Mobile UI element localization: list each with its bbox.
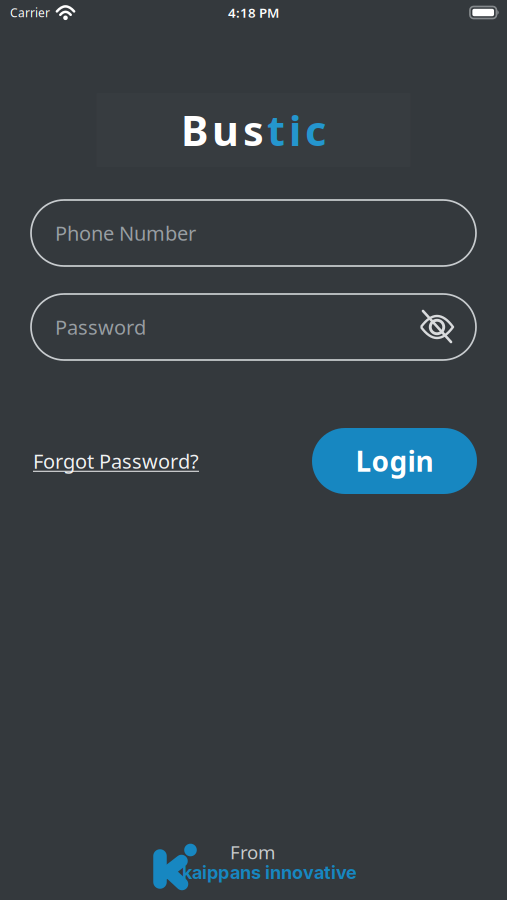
staticText: B u s <box>181 103 264 157</box>
staticText: Forgot Password? <box>33 448 199 474</box>
staticText: Carrier <box>10 4 50 20</box>
staticText: kaippans innovative <box>182 862 357 883</box>
staticText: Phone Number <box>55 220 196 246</box>
button[interactable]: Show password <box>420 310 454 344</box>
button[interactable]: Login <box>312 428 477 494</box>
button[interactable]: Forgot Password? <box>33 448 199 474</box>
staticText: Password <box>55 314 146 340</box>
staticText: From <box>230 840 275 864</box>
staticText: Login <box>355 442 433 480</box>
staticText: 4:18 PM <box>228 4 279 21</box>
staticText: t i c <box>267 103 326 157</box>
